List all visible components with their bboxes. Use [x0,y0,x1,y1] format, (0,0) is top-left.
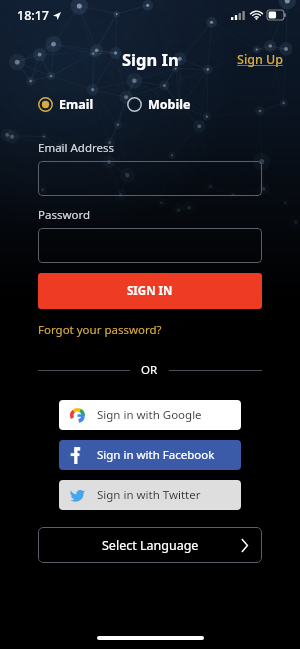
staticText: SIGN IN [127,283,173,299]
button[interactable]: Sign in with Google [59,400,241,430]
staticText: Sign In [122,48,179,70]
staticText: Email [59,96,94,113]
staticText: Select Language [102,537,199,554]
staticText: Sign in with Facebook [97,447,215,463]
button[interactable]: Mobile [127,96,191,113]
button[interactable]: Select Language [38,527,262,563]
staticText: Sign Up [237,51,284,68]
staticText: OR [141,362,158,378]
button[interactable]: Email [38,96,94,113]
button[interactable]: SIGN IN [38,273,262,309]
staticText: Sign in with Twitter [97,487,201,503]
button[interactable] [38,228,262,263]
button[interactable]: Sign in with Twitter [59,480,241,510]
button[interactable]: Sign in with Facebook [59,440,241,470]
staticText: Mobile [148,96,191,113]
staticText: 18:17 [17,7,50,24]
staticText: Email Address [38,140,115,156]
staticText: Password [38,207,91,223]
button[interactable]: Sign Up [237,51,284,68]
button[interactable]: Sign In [122,48,179,70]
button[interactable]: Forgot your password? [38,322,162,338]
staticText: Forgot your password? [38,322,162,338]
staticText: Sign in with Google [97,407,202,423]
button[interactable] [38,161,262,196]
